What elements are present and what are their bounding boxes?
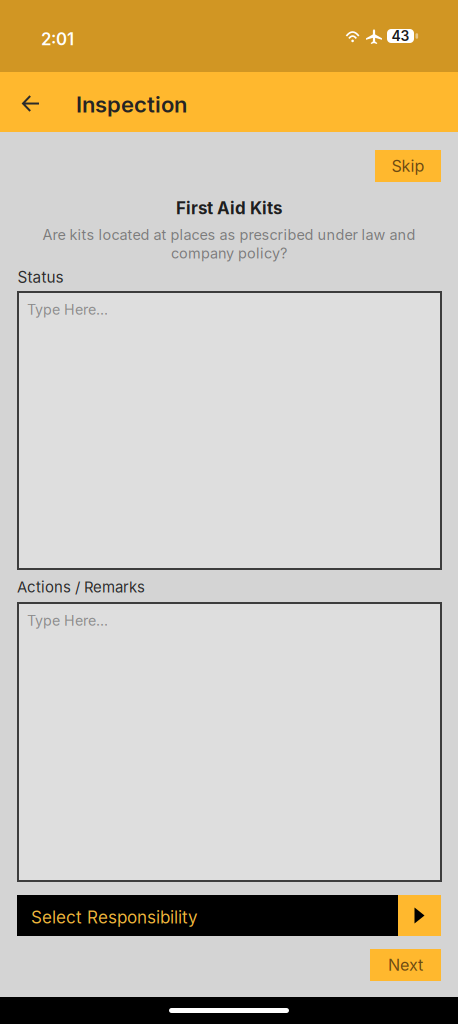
staticText: Inspection [76,91,187,118]
staticText: 43 [391,28,409,44]
staticText: Are kits located at places as prescribed… [42,226,415,243]
staticText: First Aid Kits [176,198,282,218]
staticText: Status [17,268,63,287]
staticText: 2:01 [41,29,74,49]
staticText: Skip [391,156,424,176]
staticText: Next [388,955,423,975]
button[interactable]: Skip [375,150,441,182]
staticText: Actions / Remarks [17,578,145,596]
staticText: Type Here... [27,612,108,629]
button[interactable]: Next [370,949,441,981]
staticText: Select Responsibility [31,907,198,928]
staticText: company policy? [171,244,287,262]
button[interactable]: Select Responsibility [17,895,441,936]
staticText: Type Here... [27,301,108,318]
button[interactable]: Back [12,83,52,125]
